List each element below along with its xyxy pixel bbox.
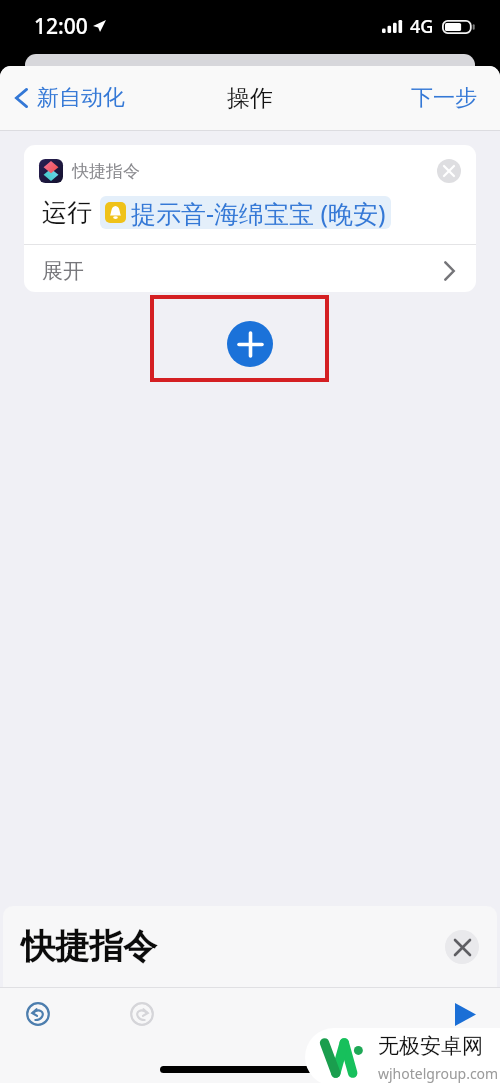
button[interactable]: 展开 [24, 245, 476, 292]
staticText: 展开 [42, 258, 84, 284]
staticText: 运行 [42, 197, 92, 228]
button[interactable]: 删除 [437, 159, 461, 183]
staticText: 12:00 [34, 12, 88, 41]
button[interactable]: 重做 [125, 997, 159, 1031]
button[interactable]: 下一步 [387, 74, 500, 122]
staticText: 无极安卓网 [378, 1033, 483, 1059]
staticText: 快捷指令 [21, 925, 157, 968]
button[interactable]: 新自动化 [0, 76, 137, 120]
staticText: 操作 [227, 84, 273, 113]
button[interactable]: 运行 [448, 997, 482, 1031]
button[interactable]: 添加操作 [227, 321, 273, 367]
staticText: 新自动化 [37, 84, 125, 112]
staticText: wjhotelgroup.com [378, 1064, 499, 1083]
button[interactable]: 撤销 [21, 997, 55, 1031]
staticText: 4G [410, 14, 434, 39]
button[interactable]: 清除 [445, 930, 479, 964]
staticText: 快捷指令 [72, 161, 140, 182]
staticText: 提示音-海绵宝宝 (晚安) [131, 196, 386, 229]
